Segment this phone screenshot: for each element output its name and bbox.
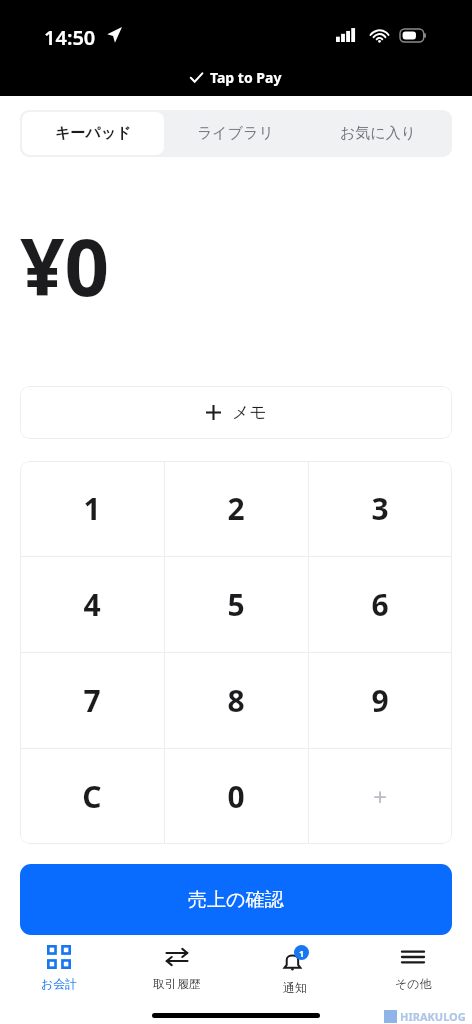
button[interactable]: 通知 [236, 935, 354, 1007]
other: お会計 [47, 945, 71, 969]
button[interactable]: 6 [308, 556, 452, 652]
staticText: メモ [232, 402, 267, 423]
staticText: Tap to Pay [210, 68, 282, 87]
staticText: 通知 [283, 980, 307, 995]
staticText: 売上の確認 [188, 888, 284, 912]
staticText: 9 [371, 680, 389, 721]
staticText: 取引履歴 [153, 976, 201, 991]
staticText: 7 [83, 680, 101, 721]
staticText: 3 [371, 488, 389, 529]
staticText: 5 [227, 584, 245, 625]
button[interactable]: 8 [164, 652, 308, 748]
staticText: その他 [395, 976, 432, 991]
staticText: ¥0 [20, 213, 110, 319]
staticText: 2 [227, 488, 245, 529]
button[interactable]: 取引履歴 [118, 935, 236, 1007]
button[interactable]: 4 [20, 556, 164, 652]
button[interactable]: C [20, 748, 164, 844]
other: その他 [401, 945, 425, 969]
button[interactable]: キーパッド [22, 112, 164, 155]
button[interactable]: 0 [164, 748, 308, 844]
staticText: 4 [83, 584, 101, 625]
staticText: 1 [83, 488, 101, 529]
staticText: 6 [371, 584, 389, 625]
button[interactable]: 1 [20, 461, 164, 556]
staticText: お気に入り [340, 124, 417, 143]
button[interactable]: 2 [164, 461, 308, 556]
button[interactable]: 9 [308, 652, 452, 748]
staticText: HIRAKULOG [400, 1009, 466, 1024]
button[interactable]: お会計 [0, 935, 118, 1007]
button[interactable]: 3 [308, 461, 452, 556]
button[interactable]: その他 [354, 935, 472, 1007]
other: 取引履歴 [165, 945, 189, 969]
button[interactable]: 売上の確認 [20, 864, 452, 935]
staticText: + [373, 780, 387, 813]
button[interactable]: お気に入り [307, 112, 450, 155]
staticText: C [82, 776, 102, 817]
other: 通知 [281, 945, 309, 973]
staticText: 8 [227, 680, 245, 721]
button[interactable]: 7 [20, 652, 164, 748]
button[interactable]: メモ [20, 386, 452, 439]
staticText: 14:50 [44, 24, 96, 51]
staticText: ライブラリ [197, 124, 274, 143]
staticText: 0 [227, 776, 245, 817]
button[interactable]: 5 [164, 556, 308, 652]
button[interactable]: ライブラリ [164, 112, 307, 155]
staticText: 1 [299, 947, 305, 959]
staticText: お会計 [41, 976, 78, 991]
button[interactable]: + [308, 748, 452, 844]
staticText: キーパッド [55, 124, 132, 143]
